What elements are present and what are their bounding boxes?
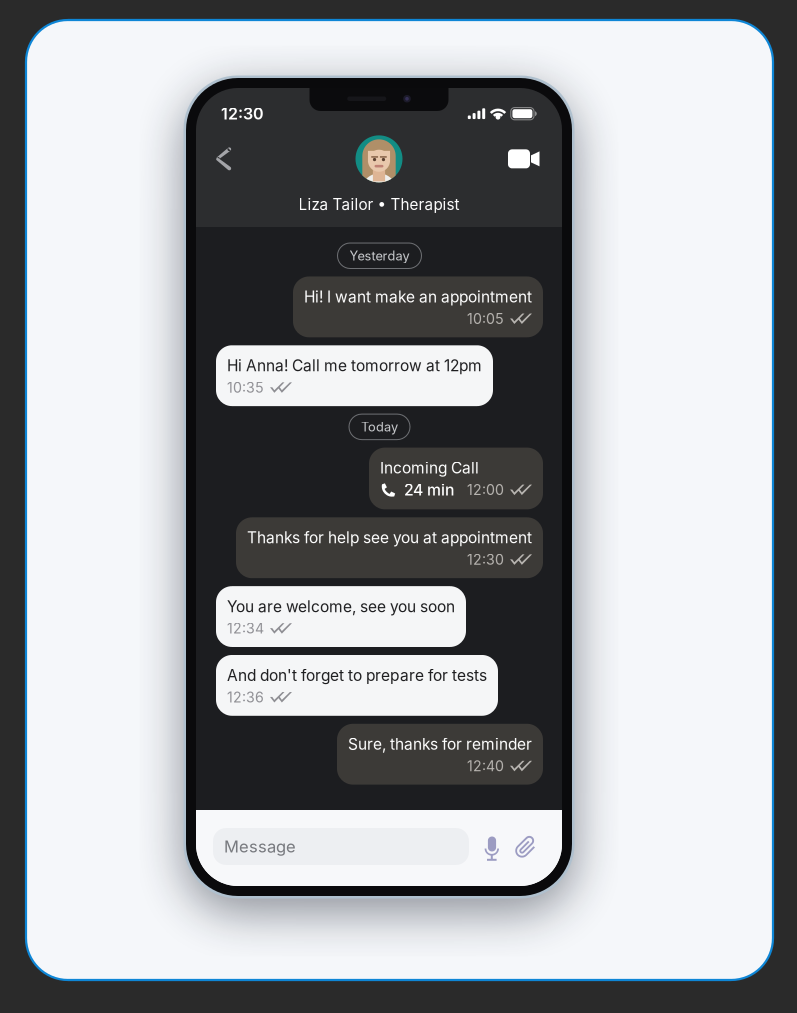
staticText: Thanks for help see you at appointment	[247, 528, 532, 547]
staticText: 12:34	[227, 620, 264, 637]
staticText: Hi Anna! Call me tomorrow at 12pm	[227, 356, 482, 375]
staticText: 12:40	[467, 757, 504, 775]
staticText: And don't forget to prepare for tests	[227, 666, 487, 685]
staticText: Today	[361, 419, 398, 435]
staticText: Yesterday	[349, 248, 409, 263]
staticText: 12:36	[227, 689, 264, 706]
staticText: Sure, thanks for reminder	[348, 735, 532, 753]
staticText: 12:30	[467, 551, 504, 568]
staticText: Hi! I want make an appointment	[304, 287, 532, 306]
button[interactable]: Back	[208, 139, 239, 178]
button[interactable]: Message	[213, 828, 469, 865]
staticText: 12:00	[467, 481, 504, 498]
staticText: Message	[224, 836, 296, 856]
staticText: Incoming Call	[380, 459, 479, 477]
staticText: 24 min	[404, 480, 454, 499]
staticText: 12:30	[221, 104, 264, 123]
staticText: You are welcome, see you soon	[227, 597, 455, 616]
button[interactable]: Record voice message	[475, 828, 509, 865]
staticText: Liza Tailor • Therapist	[298, 195, 459, 214]
staticText: 10:35	[227, 379, 264, 396]
button[interactable]: Attach file	[509, 828, 542, 865]
button[interactable]: Video call	[500, 141, 548, 176]
staticText: 10:05	[467, 310, 504, 327]
